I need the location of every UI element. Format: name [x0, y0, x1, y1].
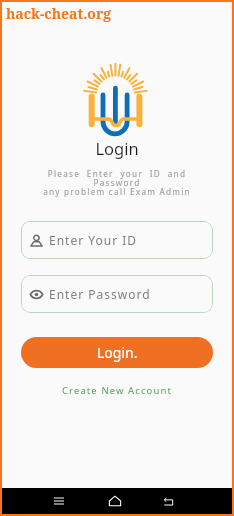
button[interactable]: Home	[102, 488, 128, 514]
button[interactable]: Back	[155, 488, 181, 514]
button[interactable]: Enter Your ID	[21, 221, 213, 259]
staticText: Login.	[97, 343, 138, 362]
staticText: Please Enter your ID and Password any pr…	[2, 168, 232, 198]
staticText: Enter Password	[49, 286, 151, 302]
staticText: Create New Account	[62, 384, 172, 397]
staticText: Enter Your ID	[49, 232, 138, 248]
staticText: Login	[2, 137, 232, 159]
staticText: hack-cheat.org	[6, 4, 112, 23]
button[interactable]: Login.	[21, 337, 213, 368]
button[interactable]: Enter Password	[21, 275, 213, 313]
button[interactable]: Recent apps	[46, 488, 72, 514]
button[interactable]: Create New Account	[57, 381, 177, 400]
